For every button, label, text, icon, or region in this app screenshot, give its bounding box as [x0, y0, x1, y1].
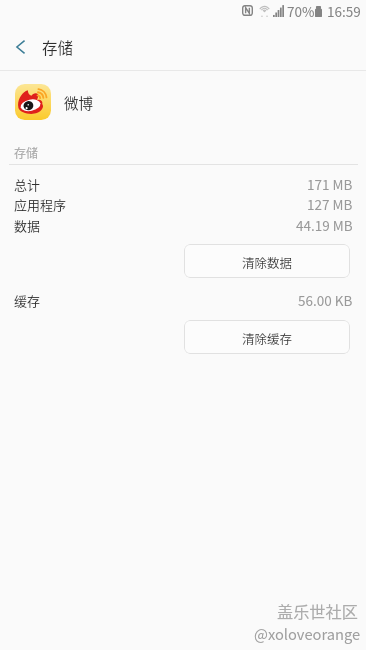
staticText: 应用程序	[14, 195, 67, 214]
staticText: 清除数据	[242, 253, 293, 271]
staticText: 存储	[42, 36, 74, 58]
staticText: 微博	[64, 92, 93, 113]
staticText: 数据	[14, 216, 41, 235]
staticText: 44.19 MB	[296, 215, 353, 235]
staticText: 清除缓存	[242, 329, 293, 347]
staticText: 127 MB	[307, 194, 353, 214]
button[interactable]: 清除数据	[184, 244, 350, 278]
staticText: 盖乐世社区	[277, 599, 358, 622]
staticText: @xoloveorange	[254, 623, 361, 644]
staticText: 总计	[14, 175, 41, 194]
staticText: 存储	[14, 144, 39, 161]
button[interactable]: 清除缓存	[184, 320, 350, 354]
button[interactable]: Back	[0, 24, 40, 70]
staticText: 16:59	[327, 1, 361, 21]
staticText: 171 MB	[307, 174, 353, 194]
staticText: 缓存	[14, 291, 41, 310]
staticText: 70%	[287, 1, 315, 21]
staticText: 56.00 KB	[298, 290, 353, 310]
button[interactable]: 微博	[0, 71, 366, 133]
